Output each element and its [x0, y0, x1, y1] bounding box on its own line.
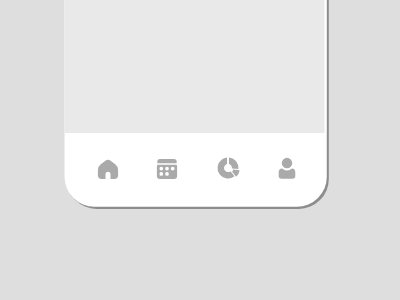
button[interactable]: Home [79, 133, 137, 207]
button[interactable]: Calendar [138, 133, 196, 207]
button[interactable]: Statistics [199, 133, 257, 207]
button[interactable]: Profile [258, 133, 316, 207]
